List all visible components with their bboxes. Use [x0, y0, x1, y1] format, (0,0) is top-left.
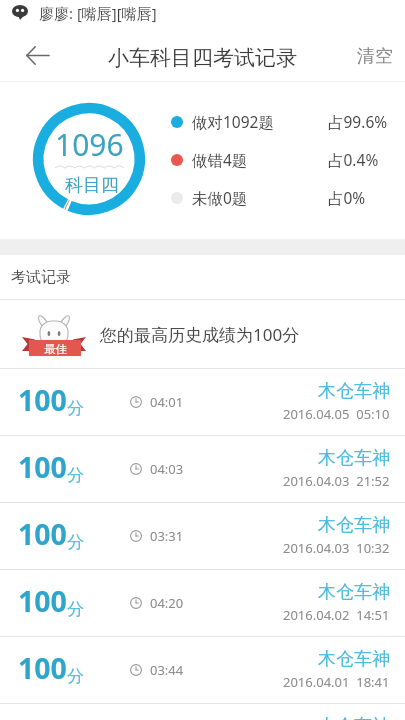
staticText: 2016.04.02 14:51 [283, 606, 390, 624]
staticText: 做对1092题 [192, 111, 274, 132]
staticText: 100 [18, 515, 67, 554]
staticText: 木仓车神 [318, 715, 390, 720]
staticText: 2016.04.05 05:10 [283, 405, 390, 423]
staticText: 未做0题 [192, 187, 248, 208]
button[interactable]: 100 [0, 436, 405, 502]
staticText: 分 [67, 398, 84, 419]
staticText: 2016.04.03 10:32 [283, 539, 390, 557]
staticText: 木仓车神 [318, 581, 390, 604]
staticText: 考试记录 [11, 268, 71, 287]
button[interactable]: 100 [0, 369, 405, 435]
staticText: 1096 [55, 124, 124, 165]
staticText: 木仓车神 [318, 447, 390, 470]
button[interactable]: Back [0, 28, 62, 81]
staticText: 04:01 [150, 393, 184, 411]
staticText: 2016.04.03 21:52 [283, 472, 390, 490]
staticText: 占99.6% [328, 111, 388, 132]
button[interactable]: 100 [0, 503, 405, 569]
button[interactable]: 100 [0, 570, 405, 636]
staticText: 木仓车神 [318, 380, 390, 403]
staticText: 占0.4% [328, 149, 379, 170]
staticText: 木仓车神 [318, 648, 390, 671]
button[interactable]: 100 [0, 637, 405, 703]
staticText: 分 [67, 666, 84, 687]
staticText: 木仓车神 [318, 514, 390, 537]
staticText: 100 [18, 649, 67, 688]
staticText: 03:31 [150, 527, 184, 545]
staticText: 科目四 [65, 174, 119, 197]
staticText: 04:20 [150, 594, 184, 612]
button[interactable]: 清空 [345, 28, 405, 81]
staticText: 最佳 [44, 342, 67, 356]
staticText: 100 [18, 381, 67, 420]
staticText: 100 [18, 448, 67, 487]
staticText: 做错4题 [192, 149, 248, 170]
staticText: 廖廖: [嘴唇][嘴唇] [39, 3, 157, 23]
staticText: 占0% [328, 187, 366, 208]
staticText: 分 [67, 532, 84, 553]
button[interactable]: 最佳 [0, 300, 405, 368]
staticText: 2016.04.01 18:41 [283, 673, 390, 691]
staticText: 清空 [357, 45, 393, 68]
staticText: 04:03 [150, 460, 184, 478]
staticText: 小车科目四考试记录 [108, 45, 297, 71]
button[interactable]: 100 [0, 704, 405, 720]
staticText: 分 [67, 599, 84, 620]
staticText: 您的最高历史成绩为100分 [100, 323, 300, 346]
staticText: 03:44 [150, 661, 184, 679]
staticText: 分 [67, 465, 84, 486]
staticText: 100 [18, 582, 67, 621]
